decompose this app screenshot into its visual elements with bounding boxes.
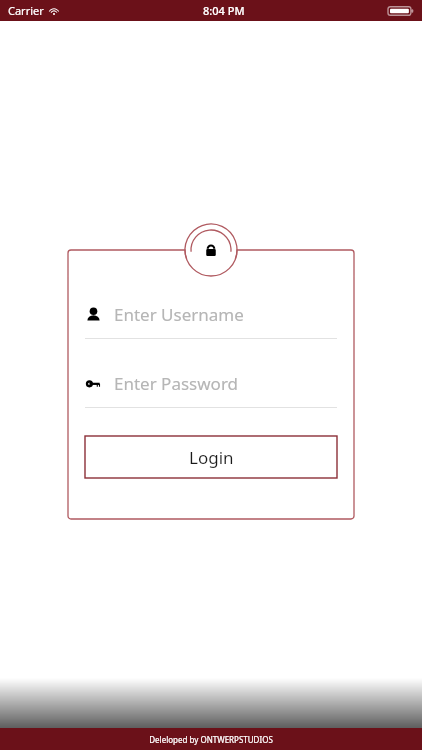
staticText: Enter Username [114, 303, 244, 326]
staticText: Carrier [8, 3, 44, 18]
staticText: Login [189, 446, 234, 469]
button[interactable]: Login [85, 436, 337, 478]
staticText: Enter Password [114, 372, 239, 395]
staticText: Deleloped by ONTWERPSTUDIOS [149, 734, 273, 745]
staticText: 8:04 PM [203, 3, 245, 18]
button[interactable]: Enter Username [85, 303, 337, 326]
button[interactable]: Enter Password [85, 372, 337, 395]
